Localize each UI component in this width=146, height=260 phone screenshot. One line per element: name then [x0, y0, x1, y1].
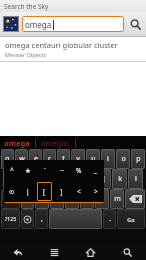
button[interactable]: _	[87, 160, 104, 181]
button[interactable]: u	[86, 149, 100, 169]
staticText: ]	[60, 187, 63, 196]
staticText: Search the Sky	[4, 2, 49, 11]
button[interactable]: ,	[35, 209, 48, 229]
button[interactable]: ~	[53, 160, 70, 181]
button[interactable]: i	[101, 149, 115, 169]
staticText: v	[70, 194, 74, 204]
staticText: omegas	[41, 138, 70, 148]
staticText: omega	[4, 138, 30, 148]
button[interactable]: g	[64, 169, 79, 189]
staticText: ★	[25, 167, 31, 175]
staticText: n	[100, 194, 105, 204]
button[interactable]: ?123	[1, 209, 20, 229]
button[interactable]: %	[70, 160, 87, 181]
staticText: %	[76, 166, 82, 175]
staticText: k	[118, 174, 122, 184]
staticText: i	[107, 154, 109, 164]
button[interactable]: ]	[54, 182, 69, 201]
button[interactable]: q	[1, 149, 14, 169]
button[interactable]: >	[88, 182, 103, 201]
button[interactable]: omega	[3, 138, 31, 148]
staticText: e	[34, 154, 38, 164]
button[interactable]: |	[21, 182, 35, 201]
staticText: omega	[25, 19, 52, 30]
button[interactable]: ^	[4, 160, 20, 181]
staticText: b	[85, 194, 90, 204]
staticText: o	[121, 154, 126, 164]
button[interactable]: h	[80, 169, 95, 189]
button[interactable]: t	[57, 149, 70, 169]
staticText: |	[26, 187, 30, 196]
button[interactable]: x	[35, 189, 49, 209]
button[interactable]: Backspace	[125, 189, 145, 209]
button[interactable]: <	[71, 182, 86, 201]
button[interactable]: w	[15, 149, 28, 169]
button[interactable]: f	[48, 169, 63, 189]
button[interactable]: ^	[4, 160, 104, 202]
staticText: r	[48, 154, 51, 164]
button[interactable]: App icon	[3, 16, 19, 32]
staticText: _	[94, 166, 97, 175]
button[interactable]: Go	[117, 209, 145, 229]
button[interactable]: l	[128, 169, 143, 189]
button[interactable]: c	[50, 189, 64, 209]
button[interactable]: `	[36, 160, 53, 181]
staticText: d	[38, 174, 43, 184]
button[interactable]: .	[103, 209, 116, 229]
staticText: `	[44, 166, 46, 175]
staticText: p	[136, 154, 141, 164]
button[interactable]: Space	[49, 209, 102, 229]
button[interactable]: omega centauri globular cluster	[0, 37, 146, 61]
staticText: q	[5, 154, 10, 164]
staticText: l	[135, 174, 137, 184]
button[interactable]: n	[95, 189, 109, 209]
button[interactable]: z	[21, 189, 34, 209]
button[interactable]: omegas	[40, 138, 71, 148]
staticText: u	[91, 154, 96, 164]
button[interactable]: o	[116, 149, 130, 169]
button[interactable]: k	[112, 169, 127, 189]
button[interactable]: j	[96, 169, 111, 189]
button[interactable]: Shift	[1, 189, 20, 209]
staticText: [	[43, 187, 46, 196]
staticText: x	[40, 194, 44, 204]
button[interactable]: y	[71, 149, 85, 169]
button[interactable]: b	[80, 189, 94, 209]
button[interactable]: ⊙	[5, 182, 19, 201]
staticText: omega centauri globular cluster	[5, 40, 118, 50]
button[interactable]: m	[110, 189, 124, 209]
button[interactable]: p	[131, 149, 145, 169]
staticText: Go	[127, 216, 135, 223]
button[interactable]: Back	[0, 244, 36, 260]
button[interactable]: ★	[20, 160, 36, 181]
staticText: j	[103, 174, 105, 184]
staticText: >	[94, 187, 98, 196]
staticText: ?123	[5, 216, 16, 223]
button[interactable]: e	[29, 149, 42, 169]
button[interactable]: Home	[72, 244, 109, 260]
button[interactable]: s	[18, 169, 32, 189]
staticText: t	[62, 154, 65, 164]
button[interactable]: a	[3, 169, 17, 189]
button[interactable]: omega	[22, 16, 124, 32]
button[interactable]: Search	[127, 16, 143, 32]
button[interactable]: Menu	[36, 244, 72, 260]
button[interactable]: [	[37, 182, 52, 201]
staticText: z	[26, 194, 30, 204]
button[interactable]: Input options	[21, 209, 34, 229]
staticText: ^	[10, 166, 14, 175]
button[interactable]: r	[43, 149, 56, 169]
staticText: w	[19, 154, 25, 164]
button[interactable]: d	[33, 169, 47, 189]
button[interactable]: v	[65, 189, 79, 209]
button[interactable]: Search	[109, 244, 146, 260]
staticText: ⊙	[9, 188, 15, 196]
staticText: .	[109, 214, 111, 224]
staticText: Messier Objects	[5, 51, 47, 58]
staticText: c	[55, 194, 59, 204]
